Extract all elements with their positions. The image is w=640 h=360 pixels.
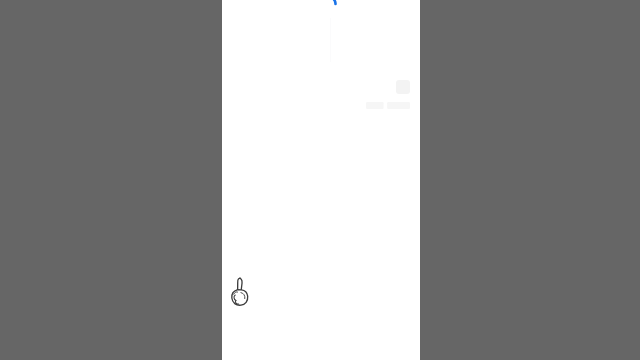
button[interactable]: Pointer [228, 277, 252, 307]
button[interactable]: Loading [318, 0, 338, 14]
button[interactable]: Placeholder content [366, 80, 410, 109]
